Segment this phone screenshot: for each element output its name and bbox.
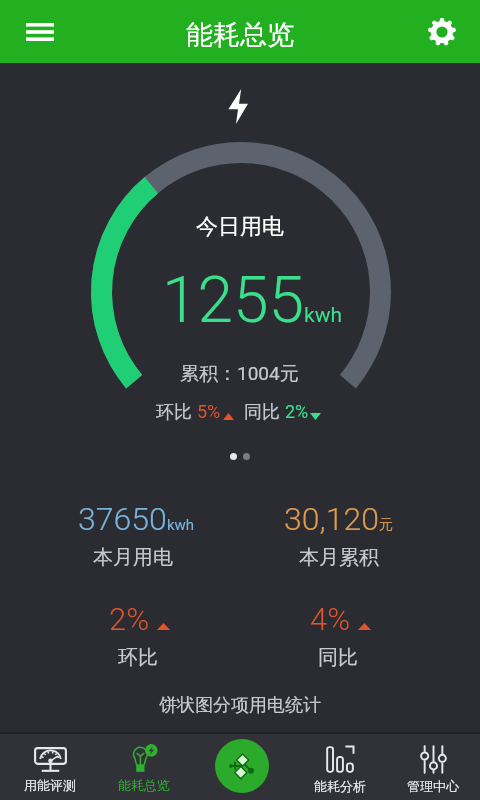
staticText: 1255 <box>162 263 304 338</box>
staticText: 30,120 <box>284 500 379 538</box>
staticText: 管理中心 <box>407 778 459 794</box>
staticText: 能耗总览 <box>118 777 170 793</box>
staticText: 环比 <box>118 645 158 670</box>
button[interactable]: Devices <box>215 739 269 793</box>
staticText: 本月累积 <box>299 545 379 570</box>
staticText: 饼状图分项用电统计 <box>0 694 480 717</box>
staticText: 本月用电 <box>93 545 173 570</box>
staticText: 环比 <box>156 401 192 424</box>
staticText: 4% <box>310 601 351 637</box>
staticText: 用能评测 <box>24 777 76 793</box>
button[interactable]: 用能评测 <box>2 734 98 800</box>
button[interactable]: Settings <box>420 10 464 54</box>
staticText: 能耗总览 <box>186 18 294 52</box>
button[interactable]: Menu <box>18 10 62 54</box>
staticText: kwh <box>167 516 195 534</box>
staticText: 2% <box>109 601 150 637</box>
staticText: 元 <box>379 516 393 534</box>
staticText: 累积：1004元 <box>180 362 299 386</box>
staticText: 2% <box>285 401 309 422</box>
staticText: 能耗分析 <box>314 778 366 794</box>
staticText: 今日用电 <box>196 213 284 241</box>
staticText: 同比 <box>318 645 358 670</box>
staticText: 37650 <box>78 500 167 538</box>
button[interactable]: 能耗分析 <box>292 734 388 800</box>
staticText: kwh <box>304 303 342 328</box>
button[interactable]: 管理中心 <box>385 734 480 800</box>
staticText: 5% <box>197 401 221 422</box>
button[interactable]: 能耗总览 <box>96 734 192 800</box>
staticText: 同比 <box>244 401 280 424</box>
